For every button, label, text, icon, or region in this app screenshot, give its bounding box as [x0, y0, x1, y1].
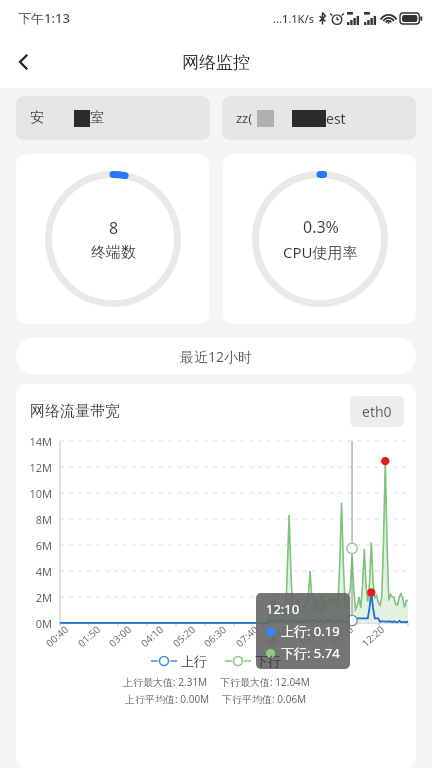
button[interactable]: eth0	[350, 396, 404, 427]
staticText: 03:00	[106, 622, 134, 650]
button[interactable]: 最近12小时	[16, 338, 416, 374]
staticText: 0M	[16, 616, 52, 631]
staticText: 最近12小时	[180, 347, 253, 366]
staticText: ...1.1K/s	[273, 11, 315, 26]
staticText: est	[326, 109, 346, 128]
button[interactable]: 下行	[225, 653, 281, 669]
button[interactable]: zz(	[222, 96, 416, 140]
staticText: 室	[90, 109, 104, 127]
staticText: 05:20	[170, 622, 198, 650]
staticText: 上行最大值: 2.31M	[123, 675, 208, 689]
staticText: 下行最大值: 12.04M	[220, 675, 310, 689]
staticText: 2M	[16, 590, 52, 605]
staticText: 8M	[16, 512, 52, 527]
staticText: 12M	[16, 460, 52, 475]
staticText: 下行	[255, 653, 281, 669]
staticText: 12:20	[359, 622, 387, 650]
staticText: 14M	[16, 434, 52, 449]
staticText: 04:10	[138, 622, 166, 650]
staticText: 10M	[16, 486, 52, 501]
button[interactable]: Back	[0, 38, 48, 86]
staticText: 0.3%	[303, 216, 339, 238]
staticText: 下午1:13	[18, 9, 70, 27]
staticText: 终端数	[91, 243, 136, 262]
staticText: 6M	[16, 538, 52, 553]
staticText: 4M	[16, 564, 52, 579]
staticText: eth0	[362, 402, 392, 421]
staticText: CPU使用率	[283, 242, 358, 262]
staticText: 00:40	[43, 622, 71, 650]
button[interactable]: 8	[16, 154, 209, 324]
staticText: 下行: 5.74	[281, 644, 340, 662]
staticText: 01:50	[75, 622, 103, 650]
button[interactable]: 0.3%	[223, 154, 416, 324]
staticText: 12:10	[266, 600, 300, 618]
staticText: 11:10	[328, 622, 356, 650]
staticText: 上行	[181, 653, 207, 669]
staticText: 08:50	[264, 622, 292, 650]
staticText: zz(	[236, 109, 253, 127]
staticText: 10:00	[296, 622, 324, 650]
button[interactable]: 上行	[151, 653, 207, 669]
staticText: 网络监控	[182, 52, 250, 73]
staticText: 上行: 0.19	[281, 622, 340, 640]
staticText: 07:40	[233, 622, 261, 650]
staticText: 下行平均值: 0.06M	[222, 692, 307, 706]
staticText: 8	[109, 217, 119, 239]
staticText: 06:30	[201, 622, 229, 650]
staticText: 网络流量带宽	[30, 402, 120, 421]
button[interactable]: 安	[16, 96, 210, 140]
staticText: 上行平均值: 0.00M	[125, 692, 210, 706]
staticText: 安	[30, 109, 44, 127]
